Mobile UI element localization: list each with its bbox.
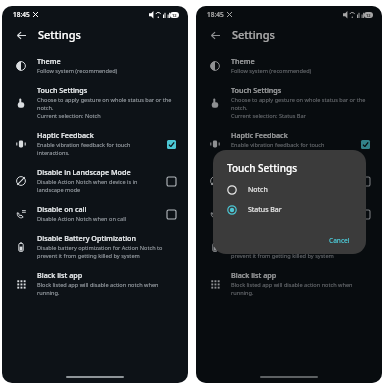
button[interactable]: Touch Settings (196, 80, 382, 125)
staticText: Disable on call (37, 204, 87, 214)
staticText: Disable Action Notch when on call (37, 215, 127, 223)
button[interactable]: Black list app (196, 265, 382, 302)
staticText: Choose to apply gesture on whole status … (37, 96, 178, 120)
staticText: Cancel (329, 236, 350, 245)
staticText: Haptic Feedback (231, 130, 288, 140)
button[interactable]: Back (207, 27, 223, 43)
staticText: Disable in Landscape Mode (231, 167, 325, 177)
staticText: 18:45 (207, 10, 224, 19)
button[interactable]: Black list app (2, 265, 188, 302)
button[interactable]: Back (13, 27, 29, 43)
staticText: Status Bar (248, 205, 282, 215)
staticText: 12 (172, 13, 177, 18)
button[interactable]: Notch (227, 185, 355, 195)
button[interactable]: Disable in Landscape Mode (196, 162, 382, 199)
staticText: Black list app (231, 270, 277, 280)
staticText: Touch Settings (37, 85, 88, 95)
staticText: Notch (248, 185, 268, 195)
button[interactable]: Disable in Landscape Mode (358, 174, 372, 188)
staticText: Touch Settings (227, 161, 298, 175)
staticText: Enable vibration feedback for touch inte… (37, 141, 158, 157)
staticText: Settings (232, 27, 275, 42)
button[interactable]: Disable on call (358, 207, 372, 221)
staticText: Enable vibration feedback for touch inte… (231, 141, 352, 157)
button[interactable]: Haptic Feedback (358, 137, 372, 151)
button[interactable]: Disable in Landscape Mode (164, 174, 178, 188)
button[interactable]: Status Bar (227, 205, 355, 215)
button[interactable]: Haptic Feedback (164, 137, 178, 151)
staticText: Block listed app will disable action not… (231, 281, 372, 297)
staticText: Disable on call (231, 204, 281, 214)
staticText: Block listed app will disable action not… (37, 281, 178, 297)
button[interactable]: Haptic Feedback (2, 125, 188, 162)
button[interactable]: Haptic Feedback (196, 125, 382, 162)
staticText: Touch Settings (231, 85, 282, 95)
staticText: Disable battery optimization for Action … (37, 244, 178, 260)
button[interactable]: Theme (196, 51, 382, 80)
staticText: Theme (37, 56, 61, 66)
button[interactable]: Disable on call (164, 207, 178, 221)
staticText: Disable Battery Optimization (231, 233, 331, 243)
staticText: Disable Action Notch when device is in l… (37, 178, 158, 194)
staticText: 12 (366, 13, 371, 18)
staticText: Theme (231, 56, 255, 66)
button[interactable]: Touch Settings (2, 80, 188, 125)
staticText: Follow system (recommended) (37, 67, 118, 75)
staticText: Disable Action Notch when device is in l… (231, 178, 352, 194)
staticText: Black list app (37, 270, 83, 280)
button[interactable]: Disable on call (2, 199, 188, 228)
staticText: Disable battery optimization for Action … (231, 244, 372, 260)
staticText: Follow system (recommended) (231, 67, 312, 75)
button[interactable]: Disable on call (196, 199, 382, 228)
staticText: 18:45 (13, 10, 30, 19)
button[interactable]: Cancel (324, 233, 355, 248)
staticText: Disable Battery Optimization (37, 233, 137, 243)
button[interactable]: Disable in Landscape Mode (2, 162, 188, 199)
button[interactable]: Disable Battery Optimization (2, 228, 188, 265)
staticText: Choose to apply gesture on whole status … (231, 96, 372, 120)
staticText: Haptic Feedback (37, 130, 94, 140)
button[interactable]: Theme (2, 51, 188, 80)
staticText: Disable in Landscape Mode (37, 167, 131, 177)
button[interactable]: Disable Battery Optimization (196, 228, 382, 265)
staticText: Settings (38, 27, 81, 42)
